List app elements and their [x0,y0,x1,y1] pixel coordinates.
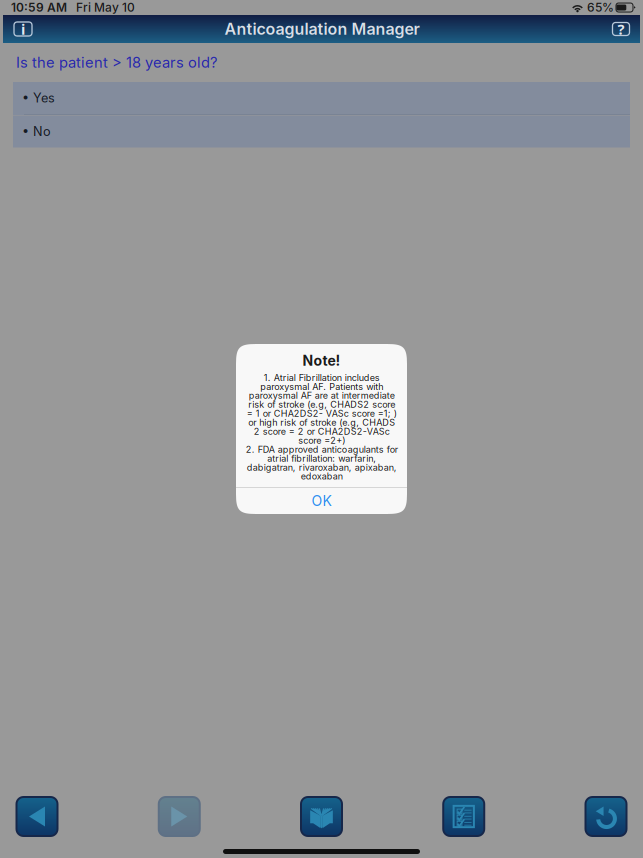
button[interactable]: Restart [585,797,626,836]
button[interactable]: Help [610,18,632,40]
staticText: • No [22,124,51,139]
staticText: 10:59 AM [11,0,67,15]
button[interactable]: • No [13,115,630,147]
button[interactable]: Checklist [443,797,484,836]
staticText: 1. Atrial Fibrillation includes paroxysm… [245,372,397,482]
staticText: 65% [587,0,614,15]
button[interactable]: Guide [301,797,342,836]
staticText: Fri May 10 [67,0,135,15]
staticText: Anticoagulation Manager [224,19,419,39]
staticText: i [21,19,25,39]
button[interactable]: Forward [159,797,200,836]
staticText: Note! [302,352,340,369]
staticText: ? [617,19,624,39]
button[interactable]: • Yes [13,82,630,114]
button[interactable]: Back [16,797,57,836]
button[interactable]: OK [236,488,407,514]
button[interactable]: Info [12,18,34,40]
staticText: OK [311,492,331,509]
staticText: Is the patient > 18 years old? [16,54,217,71]
staticText: • Yes [22,90,55,106]
